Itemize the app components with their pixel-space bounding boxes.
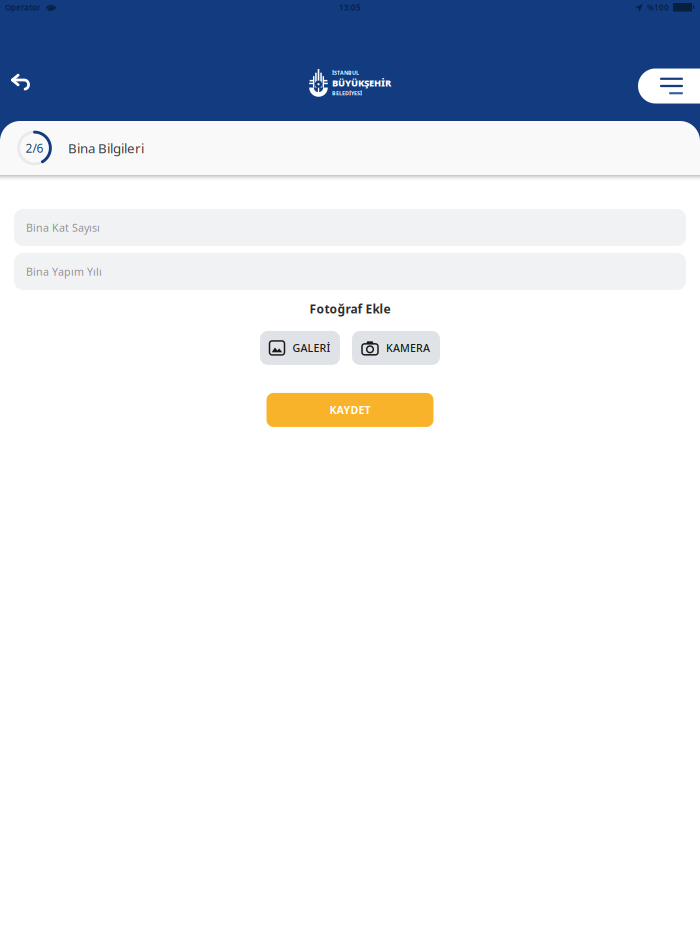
staticText: %100 xyxy=(647,2,669,13)
button[interactable]: Geri xyxy=(0,61,42,105)
button[interactable]: GALERİ xyxy=(260,331,340,365)
staticText: İSTANBUL xyxy=(332,69,359,76)
staticText: 13:05 xyxy=(339,2,361,13)
staticText: Bina Bilgileri xyxy=(68,139,144,157)
staticText: Operatör xyxy=(5,2,40,13)
staticText: GALERİ xyxy=(292,341,330,355)
button[interactable]: KAMERA xyxy=(352,331,440,365)
staticText: Bina Kat Sayısı xyxy=(26,220,100,235)
button[interactable]: KAYDET xyxy=(266,393,433,427)
staticText: BÜYÜKŞEHİR xyxy=(332,77,391,89)
staticText: BELEDİYESİ xyxy=(332,90,362,97)
staticText: 2/6 xyxy=(25,140,43,156)
staticText: Fotoğraf Ekle xyxy=(309,301,390,317)
staticText: KAYDET xyxy=(329,403,370,417)
staticText: KAMERA xyxy=(386,341,430,355)
staticText: Bina Yapım Yılı xyxy=(26,264,102,279)
button[interactable]: Menü xyxy=(638,68,700,103)
